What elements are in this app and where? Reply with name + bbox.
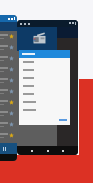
button[interactable] [17, 20, 78, 155]
button[interactable] [19, 74, 70, 82]
button[interactable] [0, 64, 17, 75]
button[interactable] [19, 66, 70, 74]
button[interactable] [19, 58, 70, 66]
button[interactable] [0, 86, 17, 97]
button[interactable] [0, 15, 17, 161]
button[interactable] [19, 106, 70, 114]
button[interactable] [0, 97, 17, 108]
button[interactable] [0, 108, 17, 119]
button[interactable] [19, 90, 70, 98]
button[interactable] [0, 42, 17, 53]
button[interactable] [0, 75, 17, 86]
button[interactable] [0, 119, 17, 130]
button[interactable] [0, 130, 17, 141]
button[interactable] [0, 53, 17, 64]
button[interactable] [19, 98, 70, 106]
button[interactable] [0, 31, 17, 42]
button[interactable] [19, 82, 70, 90]
